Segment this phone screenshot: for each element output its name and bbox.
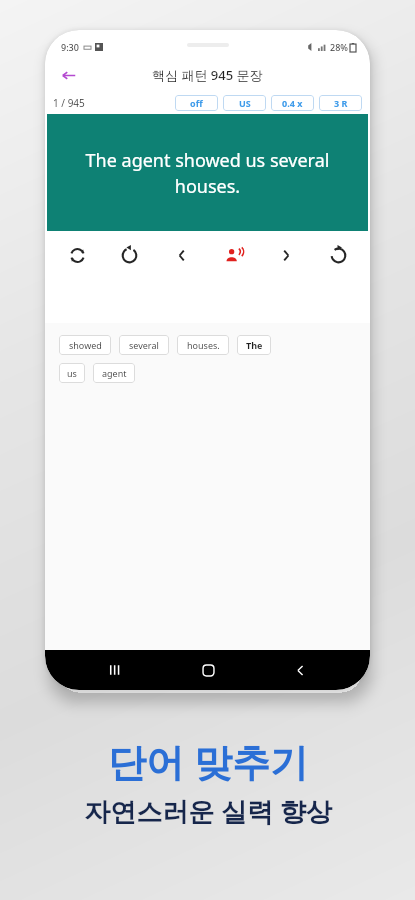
button[interactable]: US — [223, 95, 266, 111]
staticText: 자연스러운 실력 향상 — [84, 793, 332, 829]
staticText: US — [239, 97, 251, 109]
staticText: agent — [102, 367, 127, 379]
button[interactable]: Speak sentence — [214, 235, 254, 275]
button[interactable]: us — [59, 363, 85, 383]
button[interactable]: several — [119, 335, 169, 355]
button[interactable]: The — [237, 335, 271, 355]
button[interactable]: showed — [59, 335, 111, 355]
button[interactable]: off — [175, 95, 218, 111]
staticText: 핵심 패턴 945 문장 — [152, 66, 263, 84]
staticText: The agent showed us several houses. — [65, 148, 350, 198]
staticText: several — [129, 339, 159, 351]
button[interactable]: Previous — [161, 235, 201, 275]
button[interactable]: houses. — [177, 335, 229, 355]
staticText: 3 R — [334, 97, 348, 109]
button[interactable]: Repeat — [318, 235, 358, 275]
button[interactable]: Recent apps — [93, 650, 137, 690]
button[interactable]: Next — [266, 235, 306, 275]
button[interactable]: Replay — [109, 235, 149, 275]
button[interactable]: 3 R — [319, 95, 362, 111]
staticText: 1 / 945 — [53, 96, 85, 110]
staticText: houses. — [187, 339, 220, 351]
button[interactable]: 0.4 x — [271, 95, 314, 111]
staticText: showed — [69, 339, 102, 351]
button[interactable]: Home — [186, 650, 230, 690]
button[interactable]: Shuffle repeat — [57, 235, 97, 275]
staticText: 0.4 x — [282, 97, 303, 109]
staticText: 단어 맞추기 — [108, 735, 308, 787]
staticText: The — [246, 339, 263, 351]
button[interactable]: Back — [278, 650, 322, 690]
staticText: us — [67, 367, 77, 379]
staticText: off — [190, 97, 203, 109]
staticText: 28% — [330, 41, 348, 53]
button[interactable]: agent — [93, 363, 135, 383]
staticText: 9:30 — [61, 41, 79, 53]
button[interactable]: Back — [53, 60, 83, 90]
